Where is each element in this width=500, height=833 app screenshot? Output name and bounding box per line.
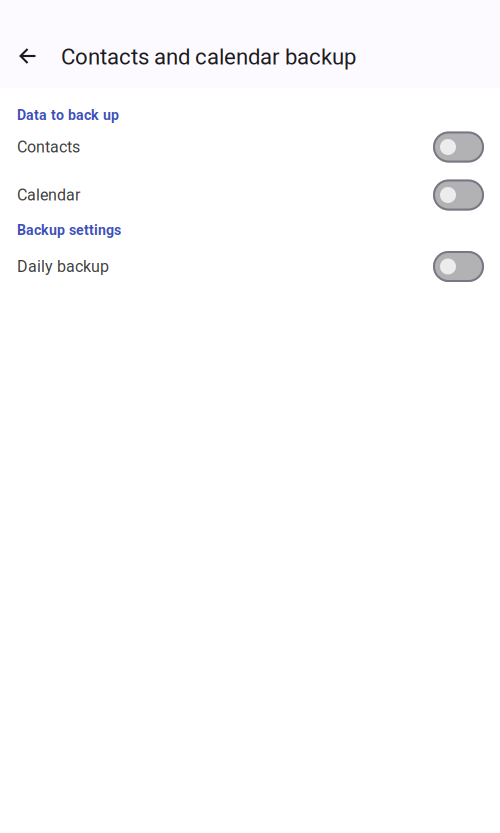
- staticText: Daily backup: [17, 257, 109, 276]
- button[interactable]: Contacts: [0, 123, 500, 171]
- staticText: Calendar: [17, 186, 80, 204]
- staticText: Data to back up: [17, 107, 119, 124]
- button[interactable]: Daily backup: [0, 243, 500, 290]
- button[interactable]: Calendar: [0, 171, 500, 219]
- staticText: Contacts and calendar backup: [61, 44, 356, 70]
- staticText: Contacts: [17, 138, 80, 156]
- button[interactable]: Back: [10, 34, 46, 78]
- staticText: Backup settings: [17, 222, 121, 239]
